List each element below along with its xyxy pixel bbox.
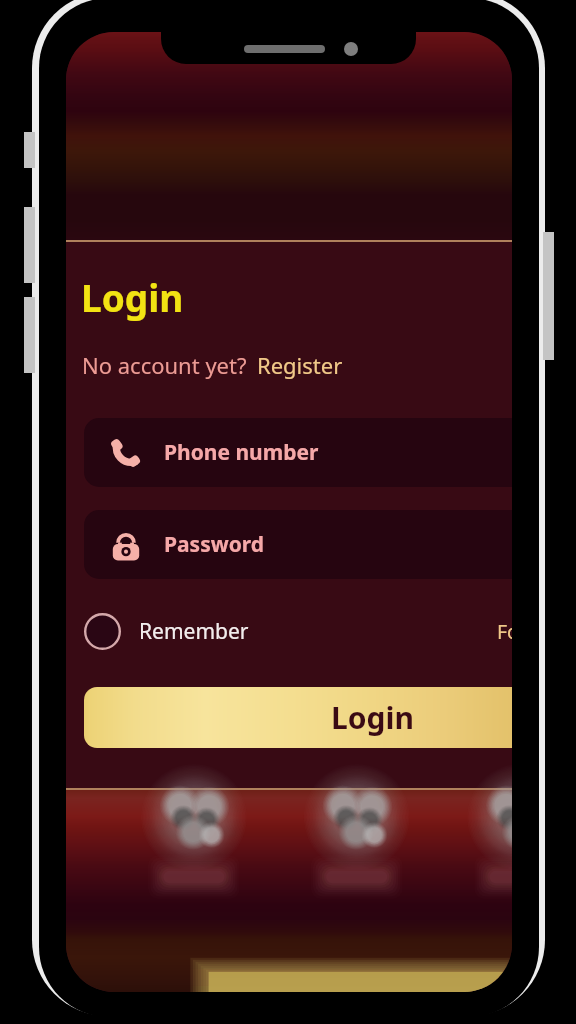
button[interactable]: Login xyxy=(84,687,512,748)
staticText: Login xyxy=(81,272,184,322)
button[interactable]: Forgot password? xyxy=(497,618,512,645)
staticText: Register xyxy=(257,350,343,380)
other: Phone number xyxy=(111,438,141,468)
button[interactable]: Remember xyxy=(84,613,249,650)
staticText: Remember xyxy=(139,617,249,646)
button[interactable]: Phone number xyxy=(84,418,512,487)
button[interactable]: Register xyxy=(257,350,343,380)
staticText: No account yet? xyxy=(82,350,247,380)
staticText: Login xyxy=(331,697,414,738)
other: Password xyxy=(111,532,141,562)
staticText: Phone number xyxy=(164,438,319,467)
staticText: Password xyxy=(164,530,265,559)
staticText: Forgot password? xyxy=(497,618,512,645)
button[interactable]: Password xyxy=(84,510,512,579)
